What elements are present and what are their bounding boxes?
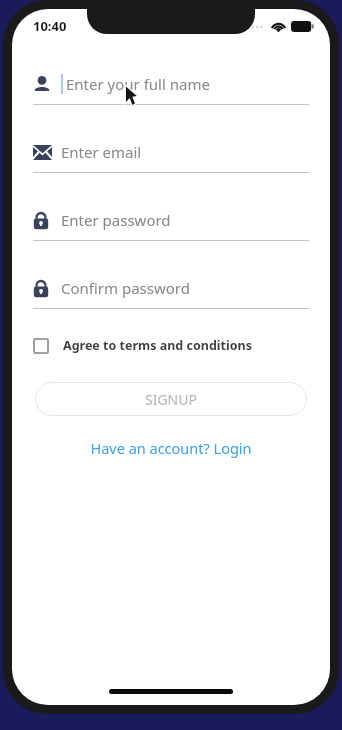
button[interactable]: SIGNUP: [35, 382, 307, 416]
button[interactable]: Enter email: [33, 137, 309, 173]
button[interactable]: Enter your full name: [33, 69, 309, 105]
staticText: Agree to terms and conditions: [63, 337, 252, 354]
button[interactable]: Confirm password: [33, 273, 309, 309]
staticText: Enter password: [61, 210, 171, 230]
staticText: Have an account? Login: [90, 438, 252, 458]
button[interactable]: Have an account? Login: [12, 438, 330, 458]
staticText: Enter email: [61, 142, 142, 162]
staticText: SIGNUP: [145, 390, 197, 409]
staticText: 10:40: [33, 17, 67, 35]
staticText: Confirm password: [61, 278, 190, 298]
button[interactable]: Enter password: [33, 205, 309, 241]
button[interactable]: Agree to terms and conditions: [33, 337, 309, 354]
staticText: Enter your full name: [66, 74, 210, 94]
